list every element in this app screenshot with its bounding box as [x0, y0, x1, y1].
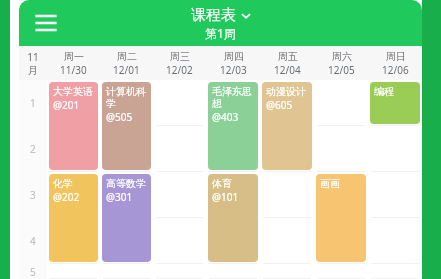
staticText: 周日: [386, 50, 406, 63]
button[interactable]: 画画: [316, 174, 366, 262]
button[interactable]: 毛泽东思想: [208, 82, 258, 170]
staticText: 月: [28, 64, 38, 77]
staticText: 课程表: [191, 6, 236, 25]
button[interactable]: 周五: [260, 46, 314, 80]
staticText: 12/05: [328, 63, 355, 77]
staticText: 计算机科学: [106, 85, 149, 110]
staticText: 1: [30, 96, 36, 110]
staticText: @201: [53, 98, 80, 112]
button[interactable]: Menu: [31, 8, 61, 38]
button[interactable]: 计算机科学: [102, 82, 151, 170]
staticText: 12/02: [166, 63, 193, 77]
staticText: @505: [106, 110, 133, 124]
staticText: @403: [212, 110, 239, 124]
staticText: @101: [212, 190, 239, 204]
staticText: 周四: [224, 50, 244, 63]
staticText: @605: [266, 98, 293, 112]
staticText: 体育: [212, 177, 232, 190]
staticText: 周一: [64, 50, 84, 63]
staticText: 周五: [278, 50, 298, 63]
staticText: 3: [30, 188, 36, 202]
button[interactable]: 周二: [100, 46, 153, 80]
staticText: 11: [27, 50, 39, 64]
staticText: 第1周: [205, 25, 236, 41]
button[interactable]: 化学: [49, 174, 98, 262]
staticText: 4: [30, 234, 36, 248]
staticText: 化学: [53, 177, 73, 190]
staticText: 周三: [170, 50, 190, 63]
button[interactable]: 周三: [153, 46, 206, 80]
staticText: 周六: [332, 50, 352, 63]
staticText: @301: [106, 190, 133, 204]
staticText: 毛泽东思想: [212, 85, 256, 110]
staticText: 高等数学: [106, 177, 146, 190]
staticText: 12/06: [382, 63, 409, 77]
button[interactable]: 周四: [206, 46, 260, 80]
staticText: 12/01: [113, 63, 140, 77]
button[interactable]: 周一: [47, 46, 100, 80]
staticText: 12/03: [220, 63, 247, 77]
staticText: 5: [30, 265, 36, 279]
staticText: 12/04: [274, 63, 301, 77]
staticText: 画画: [320, 177, 340, 190]
button[interactable]: 动漫设计: [262, 82, 312, 170]
staticText: 编程: [374, 85, 394, 98]
button[interactable]: 周六: [314, 46, 368, 80]
button[interactable]: 周日: [368, 46, 422, 80]
staticText: 2: [30, 142, 36, 156]
staticText: 11/30: [60, 63, 87, 77]
button[interactable]: 编程: [370, 82, 420, 124]
staticText: 周二: [117, 50, 137, 63]
button[interactable]: 高等数学: [102, 174, 151, 262]
staticText: 动漫设计: [266, 85, 306, 98]
button[interactable]: 大学英语: [49, 82, 98, 170]
button[interactable]: 课程表: [191, 6, 250, 41]
button[interactable]: 体育: [208, 174, 258, 262]
staticText: @202: [53, 190, 80, 204]
staticText: 大学英语: [53, 85, 93, 98]
